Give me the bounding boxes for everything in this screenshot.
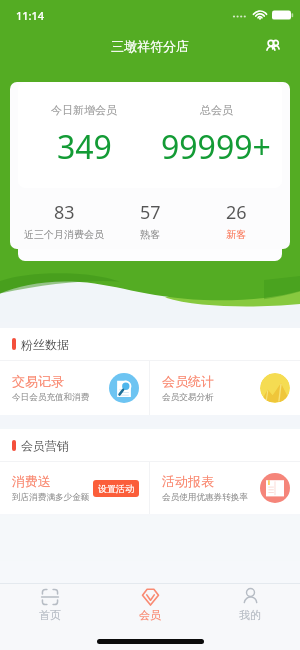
staticText: 消费送	[12, 473, 51, 489]
button[interactable]: 交易记录	[0, 361, 149, 415]
staticText: 会员	[139, 608, 161, 622]
staticText: 11:14	[16, 8, 45, 23]
staticText: 新客	[226, 228, 246, 241]
button[interactable]: 首页	[0, 584, 100, 625]
staticText: 我的	[239, 608, 261, 622]
staticText: 活动报表	[162, 473, 214, 489]
staticText: 熟客	[140, 228, 160, 241]
staticText: 会员使用优惠券转换率	[162, 492, 248, 503]
staticText: 57	[140, 200, 161, 225]
button[interactable]: 会员列表	[259, 32, 287, 60]
staticText: 26	[226, 200, 247, 225]
button[interactable]: 活动报表	[150, 462, 300, 514]
staticText: 近三个月消费会员	[24, 228, 104, 241]
staticText: 交易记录	[12, 373, 64, 389]
staticText: 总会员	[200, 103, 233, 117]
staticText: 会员统计	[162, 373, 214, 389]
staticText: 今日新增会员	[51, 103, 117, 117]
staticText: 99999+	[161, 125, 271, 169]
staticText: 三墩祥符分店	[111, 38, 189, 54]
staticText: 会员营销	[21, 438, 69, 453]
button[interactable]: 会员	[100, 584, 200, 625]
staticText: 粉丝数据	[21, 337, 69, 352]
button[interactable]: 会员统计	[150, 361, 300, 415]
button[interactable]: 设置活动	[93, 480, 139, 497]
staticText: 会员交易分析	[162, 392, 214, 403]
button[interactable]: 消费送	[0, 462, 149, 514]
staticText: 83	[54, 200, 75, 225]
button[interactable]: 我的	[200, 584, 300, 625]
staticText: 设置活动	[98, 483, 134, 494]
staticText: 到店消费满多少金额	[12, 492, 90, 503]
staticText: 349	[57, 125, 112, 169]
staticText: 首页	[39, 608, 61, 622]
staticText: 今日会员充值和消费	[12, 392, 90, 403]
